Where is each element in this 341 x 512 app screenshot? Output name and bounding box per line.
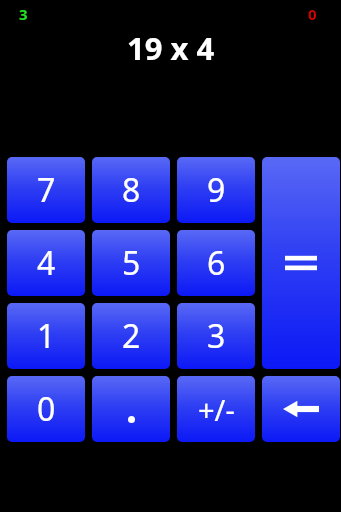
button[interactable]: 6 (177, 230, 255, 296)
button[interactable] (92, 376, 170, 442)
staticText: 9 (207, 168, 226, 212)
button[interactable]: 2 (92, 303, 170, 369)
button[interactable]: Backspace (262, 376, 340, 442)
button[interactable]: +/- (177, 376, 255, 442)
staticText: 1 (37, 314, 56, 358)
staticText: 6 (207, 241, 226, 285)
staticText: 3 (207, 314, 226, 358)
staticText: 4 (37, 241, 56, 285)
staticText: 5 (122, 241, 141, 285)
button[interactable]: 4 (7, 230, 85, 296)
button[interactable]: 3 (177, 303, 255, 369)
staticText: 0 (37, 387, 56, 431)
staticText: 2 (122, 314, 141, 358)
staticText: +/- (198, 390, 235, 429)
button[interactable]: Equals (262, 157, 340, 369)
staticText: 8 (122, 168, 141, 212)
staticText: 0 (308, 4, 317, 24)
button[interactable]: 9 (177, 157, 255, 223)
button[interactable]: 8 (92, 157, 170, 223)
button[interactable]: 7 (7, 157, 85, 223)
button[interactable]: 5 (92, 230, 170, 296)
staticText: 19 x 4 (127, 27, 215, 69)
button[interactable]: 1 (7, 303, 85, 369)
staticText: 7 (37, 168, 56, 212)
staticText: 3 (19, 4, 28, 24)
button[interactable]: 0 (7, 376, 85, 442)
